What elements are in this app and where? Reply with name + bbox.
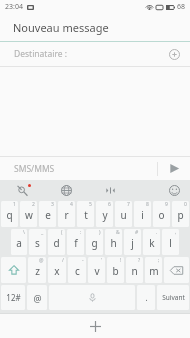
button[interactable]: Destinataire : xyxy=(0,42,190,66)
staticText: l xyxy=(169,236,172,250)
button[interactable]: . xyxy=(137,285,155,310)
staticText: SMS/MMS xyxy=(14,163,55,175)
staticText: . xyxy=(145,292,148,303)
button[interactable]: a xyxy=(11,229,27,255)
button[interactable]: d xyxy=(48,229,65,255)
button[interactable]: c xyxy=(68,257,86,283)
button[interactable]: Send xyxy=(158,157,190,180)
staticText: ( xyxy=(61,229,63,236)
button[interactable]: k xyxy=(143,229,160,255)
button[interactable]: Handwriting xyxy=(0,180,44,200)
staticText: & xyxy=(116,229,120,236)
staticText: 7 xyxy=(127,201,130,208)
button[interactable]: s xyxy=(29,229,46,255)
staticText: 12# xyxy=(6,292,21,303)
staticText: k xyxy=(149,236,155,250)
staticText: ! xyxy=(120,257,122,264)
staticText: u xyxy=(120,208,127,222)
staticText: 68 xyxy=(177,2,186,12)
staticText: w xyxy=(25,208,33,222)
button[interactable]: h xyxy=(105,229,122,255)
staticText: ' xyxy=(101,257,103,264)
staticText: q xyxy=(6,208,13,222)
staticText: ; xyxy=(158,257,160,264)
staticText: i xyxy=(141,208,144,222)
staticText: g xyxy=(91,236,98,250)
button[interactable]: e xyxy=(39,201,56,227)
staticText: e xyxy=(45,208,51,222)
button[interactable]: v xyxy=(88,257,105,283)
button[interactable]: x xyxy=(48,257,66,283)
staticText: : xyxy=(80,229,82,236)
button[interactable]: @ xyxy=(27,285,47,310)
button[interactable]: l xyxy=(162,229,179,255)
staticText: 3 xyxy=(51,201,54,208)
staticText: Nouveau message xyxy=(13,20,109,35)
staticText: v xyxy=(94,264,100,278)
staticText: Destinataire : xyxy=(14,48,68,60)
button[interactable]: Cursor control xyxy=(88,180,132,200)
button[interactable]: y xyxy=(96,201,113,227)
staticText: o xyxy=(158,208,165,222)
staticText: 6 xyxy=(108,201,111,208)
staticText: n xyxy=(131,264,138,278)
staticText: m xyxy=(149,264,159,278)
staticText: Suivant xyxy=(162,293,185,302)
staticText: 8 xyxy=(146,201,149,208)
button[interactable]: o xyxy=(153,201,170,227)
staticText: d xyxy=(53,236,60,250)
button[interactable]: Add xyxy=(84,315,106,337)
button[interactable]: q xyxy=(1,201,18,227)
staticText: 9 xyxy=(165,201,168,208)
button[interactable]: t xyxy=(77,201,94,227)
button[interactable]: g xyxy=(86,229,103,255)
staticText: z xyxy=(35,264,40,278)
button[interactable]: b xyxy=(107,257,124,283)
button[interactable]: Emoji xyxy=(158,180,190,200)
button[interactable]: Language xyxy=(44,180,88,200)
button[interactable]: f xyxy=(67,229,84,255)
button[interactable]: 12# xyxy=(1,285,25,310)
staticText: , xyxy=(175,229,177,236)
staticText: / xyxy=(62,257,64,264)
button[interactable]: n xyxy=(126,257,143,283)
staticText: t xyxy=(84,208,88,222)
button[interactable]: r xyxy=(58,201,75,227)
button[interactable]: u xyxy=(115,201,132,227)
button[interactable]: m xyxy=(145,257,162,283)
staticText: 5 xyxy=(89,201,92,208)
staticText: 0 xyxy=(184,201,187,208)
button[interactable]: w xyxy=(20,201,37,227)
staticText: p xyxy=(177,208,184,222)
staticText: x xyxy=(54,264,60,278)
staticText: j xyxy=(131,236,134,250)
button[interactable]: Add recipient xyxy=(166,46,182,62)
staticText: @ xyxy=(39,257,44,264)
staticText: # xyxy=(135,229,139,236)
button[interactable]: Backspace xyxy=(164,257,189,283)
staticText: . xyxy=(156,229,158,236)
staticText: ? xyxy=(138,257,141,264)
staticText: - xyxy=(82,257,84,264)
staticText: @ xyxy=(33,292,42,304)
staticText: 1 xyxy=(13,201,16,208)
staticText: 23:04 xyxy=(5,2,23,12)
staticText: r xyxy=(64,208,69,222)
button[interactable]: i xyxy=(134,201,151,227)
staticText: f xyxy=(74,236,78,250)
button[interactable]: Shift xyxy=(1,257,26,283)
button[interactable]: j xyxy=(124,229,141,255)
staticText: ) xyxy=(99,229,101,236)
staticText: s xyxy=(35,236,40,250)
staticText: c xyxy=(75,264,80,278)
staticText: 2 xyxy=(32,201,35,208)
staticText: 4 xyxy=(70,201,73,208)
staticText: h xyxy=(110,236,117,250)
button[interactable]: Space xyxy=(49,285,135,310)
button[interactable]: z xyxy=(28,257,46,283)
staticText: \ xyxy=(23,229,25,236)
staticText: b xyxy=(112,264,119,278)
button[interactable]: SMS/MMS xyxy=(0,157,157,180)
button[interactable]: Suivant xyxy=(157,285,189,310)
button[interactable]: p xyxy=(172,201,189,227)
